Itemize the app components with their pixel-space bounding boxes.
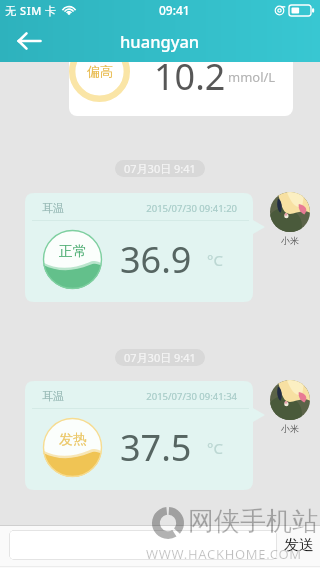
staticText: 07月30日 9:41	[124, 350, 196, 365]
button[interactable]: 耳温	[25, 193, 265, 302]
button[interactable]: 发送	[281, 531, 317, 559]
staticText: 无 SIM 卡	[5, 3, 57, 18]
button[interactable]: Back	[8, 20, 50, 62]
staticText: 耳温	[42, 201, 64, 215]
staticText: 发送	[284, 536, 314, 555]
button[interactable]: 耳温	[25, 381, 265, 490]
staticText: 正常	[59, 243, 87, 261]
button[interactable]: Avatar	[270, 192, 310, 232]
staticText: 小米	[281, 423, 299, 434]
staticText: 36.9	[120, 235, 192, 284]
button[interactable]: Avatar	[270, 380, 310, 420]
staticText: 2015/07/30 09:41:20	[117, 202, 237, 215]
button[interactable]: 偏高	[69, 62, 293, 116]
staticText: huangyan	[120, 30, 200, 52]
staticText: mmol/L	[228, 68, 276, 86]
staticText: WWW.HACKHOME.COM	[146, 545, 302, 563]
staticText: 07月30日 9:41	[124, 161, 196, 176]
staticText: 10.2	[154, 62, 226, 101]
staticText: 发热	[59, 431, 87, 449]
staticText: 09:41	[159, 2, 190, 18]
staticText: 37.5	[120, 423, 192, 472]
staticText: 耳温	[42, 389, 64, 403]
button[interactable]	[9, 530, 277, 560]
staticText: 偏高	[87, 63, 113, 79]
staticText: 2015/07/30 09:41:34	[117, 390, 237, 403]
staticText: °C	[207, 250, 223, 270]
staticText: 小米	[281, 235, 299, 246]
staticText: °C	[207, 438, 223, 458]
staticText: 网侠手机站	[188, 505, 318, 538]
